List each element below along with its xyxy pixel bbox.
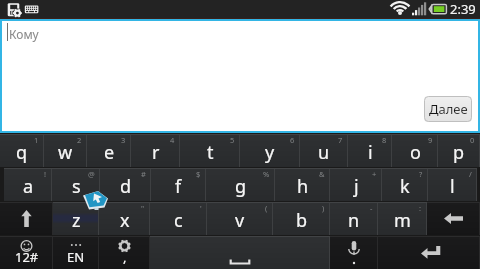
button[interactable]: f [151, 168, 206, 201]
button[interactable]: i [348, 134, 392, 167]
button[interactable]: d [100, 168, 151, 201]
button[interactable]: Далее [424, 96, 472, 122]
staticText: % [263, 169, 270, 179]
staticText: 2:39 [450, 0, 476, 18]
button[interactable]: EN [53, 236, 99, 269]
button[interactable]: Enter [378, 236, 480, 269]
staticText: u [318, 140, 330, 165]
staticText: 8 [382, 135, 387, 145]
staticText: l [450, 174, 455, 199]
button[interactable]: p [438, 134, 480, 167]
staticText: m [394, 208, 411, 233]
button[interactable]: w [44, 134, 87, 167]
staticText: 4 [170, 135, 175, 145]
staticText: ? [419, 169, 423, 179]
staticText: 7 [338, 135, 343, 145]
button[interactable]: h [275, 168, 330, 201]
button[interactable]: n [330, 202, 378, 235]
staticText: i [368, 140, 373, 165]
staticText: 2 [77, 135, 82, 145]
button[interactable]: m [378, 202, 427, 235]
staticText: , [123, 248, 127, 266]
button[interactable]: y [240, 134, 300, 167]
staticText: a [23, 174, 34, 199]
button[interactable]: u [300, 134, 348, 167]
button[interactable]: c [150, 202, 207, 235]
staticText: v [235, 208, 245, 233]
staticText: d [120, 174, 132, 199]
staticText: 6 [290, 135, 295, 145]
staticText: 0 [470, 135, 475, 145]
button[interactable]: g [206, 168, 275, 201]
staticText: / [469, 169, 472, 179]
staticText: k [400, 174, 410, 199]
button[interactable]: Shift [0, 202, 53, 235]
staticText: w [58, 140, 73, 165]
staticText: + [372, 169, 377, 179]
button[interactable]: q [0, 134, 44, 167]
staticText: c [174, 208, 183, 233]
staticText: Кому [9, 26, 39, 42]
staticText: j [354, 174, 359, 199]
staticText: $ [196, 169, 201, 179]
staticText: ' [92, 203, 94, 213]
staticText: b [296, 208, 308, 233]
staticText: : [419, 203, 422, 213]
button[interactable]: b [273, 202, 330, 235]
staticText: q [16, 140, 28, 165]
staticText: g [235, 174, 247, 199]
staticText: 3 [121, 135, 126, 145]
button[interactable]: e [87, 134, 131, 167]
staticText: y [265, 140, 275, 165]
staticText: ' [200, 203, 202, 213]
button[interactable]: 12# [0, 236, 53, 269]
button[interactable]: l [428, 168, 477, 201]
staticText: " [141, 203, 145, 213]
button[interactable]: s [52, 168, 100, 201]
staticText: z [72, 208, 81, 233]
staticText: s [72, 174, 81, 199]
button[interactable]: , [99, 236, 150, 269]
staticText: ) [322, 203, 325, 213]
button[interactable]: x [99, 202, 150, 235]
staticText: Далее [429, 100, 468, 118]
staticText: 12# [15, 248, 39, 266]
staticText: 1 [34, 135, 39, 145]
staticText: o [410, 140, 421, 165]
staticText: p [453, 140, 465, 165]
staticText: 5 [230, 135, 235, 145]
staticText: n [348, 208, 360, 233]
staticText: e [104, 140, 115, 165]
button[interactable]: Space [150, 236, 330, 269]
button[interactable]: Backspace [427, 202, 480, 235]
staticText: t [207, 140, 214, 165]
staticText: f [175, 174, 182, 199]
button[interactable]: Voice input [330, 236, 378, 269]
staticText: h [297, 174, 309, 199]
staticText: & [319, 169, 325, 179]
staticText: # [141, 169, 146, 179]
button[interactable]: o [392, 134, 438, 167]
button[interactable]: z [53, 202, 99, 235]
staticText: ( [265, 203, 268, 213]
button[interactable]: j [330, 168, 382, 201]
button[interactable]: a [4, 168, 52, 201]
staticText: 9 [428, 135, 433, 145]
staticText: r [152, 140, 160, 165]
button[interactable]: k [382, 168, 428, 201]
button[interactable]: v [207, 202, 273, 235]
staticText: x [120, 208, 130, 233]
button[interactable]: t [180, 134, 240, 167]
button[interactable]: r [131, 134, 180, 167]
staticText: EN [67, 248, 85, 266]
staticText: @ [88, 169, 95, 179]
staticText: ! [44, 169, 47, 179]
staticText: - [370, 203, 373, 213]
